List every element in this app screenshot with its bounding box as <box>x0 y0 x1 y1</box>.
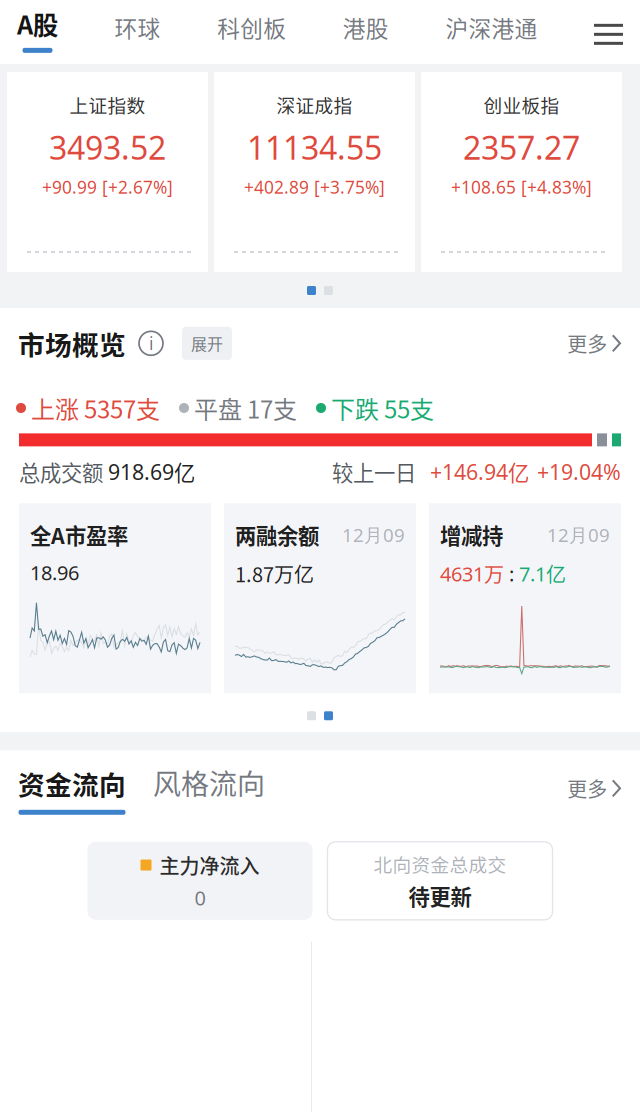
staticText: 更多 <box>567 329 607 358</box>
staticText: 主力净流入 <box>159 850 259 879</box>
staticText: 全A市盈率 <box>30 519 128 550</box>
staticText: 上证指数 <box>69 91 145 118</box>
staticText: 环球 <box>115 11 161 44</box>
staticText: 港股 <box>343 11 389 44</box>
staticText: 0 <box>194 884 205 911</box>
staticText: 北向资金总成交 <box>373 850 506 877</box>
button[interactable]: 港股 <box>343 11 389 59</box>
staticText: : <box>504 560 519 587</box>
button[interactable]: 北向资金总成交 <box>327 842 552 920</box>
staticText: +402.89 [+3.75%] <box>244 175 385 198</box>
staticText: 下跌 55支 <box>331 391 434 425</box>
button[interactable]: 环球 <box>115 11 161 59</box>
staticText: 亿 <box>174 456 195 487</box>
button[interactable]: 增减持 <box>429 503 621 693</box>
button[interactable]: 更多 <box>567 329 622 358</box>
staticText: 沪深港通 <box>445 11 537 44</box>
staticText: 12月09 <box>342 522 405 547</box>
staticText: 待更新 <box>408 880 471 911</box>
staticText: 12月09 <box>547 522 610 547</box>
button[interactable]: A股 <box>17 5 58 59</box>
staticText: 万 <box>484 559 504 588</box>
staticText: 亿 <box>546 559 566 588</box>
staticText: 资金流向 <box>18 764 126 803</box>
staticText: 1.87万亿 <box>235 559 314 588</box>
staticText: 7.1 <box>519 560 546 587</box>
button[interactable]: 更多 <box>567 774 622 803</box>
button[interactable]: 全A市盈率 <box>19 503 211 693</box>
button[interactable]: 上证指数 <box>7 72 208 272</box>
staticText: 平盘 17支 <box>194 391 297 425</box>
staticText: 创业板指 <box>483 91 559 118</box>
button[interactable]: 展开 <box>182 327 232 360</box>
staticText: 4631 <box>440 560 484 587</box>
staticText: 3493.52 <box>49 126 166 168</box>
staticText: 更多 <box>567 774 607 803</box>
staticText: 深证成指 <box>276 91 352 118</box>
button[interactable]: 科创板 <box>217 11 286 59</box>
button[interactable]: 创业板指 <box>421 72 622 272</box>
staticText: 18.96 <box>30 559 79 586</box>
staticText: 两融余额 <box>235 519 319 550</box>
button[interactable]: 资金流向 <box>18 764 126 815</box>
staticText: 上涨 5357支 <box>31 391 160 425</box>
staticText: 亿 <box>508 456 529 487</box>
button[interactable]: 风格流向 <box>153 762 265 815</box>
staticText: +146.94 <box>430 458 508 486</box>
staticText: 风格流向 <box>153 762 265 803</box>
staticText: +108.65 [+4.83%] <box>451 175 592 198</box>
staticText: i <box>149 332 153 355</box>
staticText: 较上一日 <box>332 456 416 487</box>
staticText: A股 <box>17 5 58 42</box>
button[interactable]: 深证成指 <box>214 72 415 272</box>
staticText: 总成交额 <box>19 456 108 487</box>
staticText: 11134.55 <box>247 126 382 168</box>
staticText: 展开 <box>191 332 223 355</box>
button[interactable]: 两融余额 <box>224 503 416 693</box>
button[interactable]: Menu <box>594 24 623 59</box>
button[interactable]: 主力净流入 <box>87 842 312 920</box>
button[interactable]: 沪深港通 <box>445 11 537 59</box>
staticText: +90.99 [+2.67%] <box>42 175 173 198</box>
staticText: 科创板 <box>217 11 286 44</box>
staticText: 市场概览 <box>18 324 126 363</box>
staticText: 918.69 <box>108 458 174 486</box>
staticText: 增减持 <box>440 519 503 550</box>
staticText: +19.04% <box>537 458 621 486</box>
staticText: 2357.27 <box>463 126 580 168</box>
